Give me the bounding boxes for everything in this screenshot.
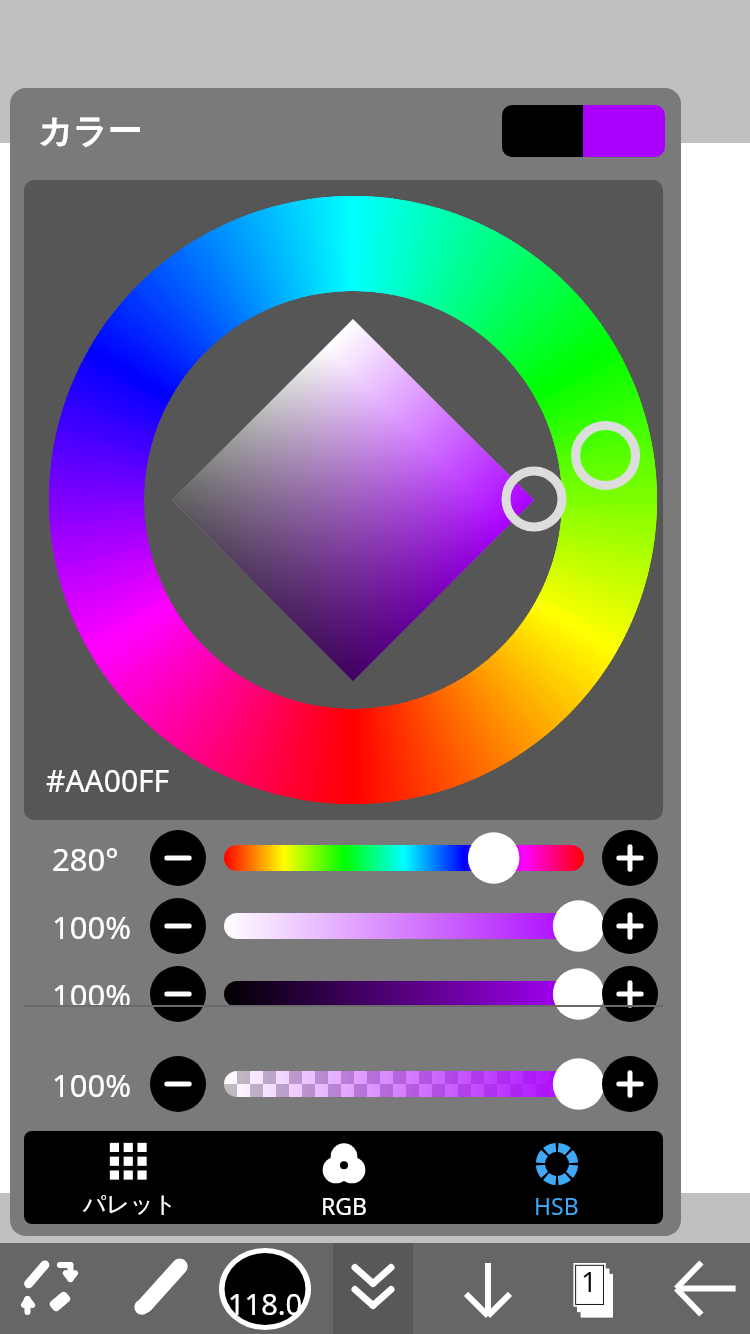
staticText: 280° bbox=[52, 838, 152, 880]
button[interactable]: #AA00FF bbox=[24, 180, 663, 820]
button[interactable]: 100% slider bbox=[220, 898, 610, 954]
button[interactable]: Increase 100% bbox=[602, 898, 658, 954]
button[interactable]: Download bbox=[443, 1243, 533, 1334]
staticText: パレット bbox=[83, 1190, 178, 1219]
button[interactable]: Current and previous color bbox=[502, 105, 665, 157]
button[interactable]: Decrease 280° bbox=[150, 830, 206, 886]
staticText: HSB bbox=[534, 1190, 579, 1221]
button[interactable]: 100% slider bbox=[220, 1056, 610, 1112]
button[interactable]: Increase 100% bbox=[602, 1056, 658, 1112]
button[interactable]: 280° slider bbox=[220, 830, 610, 886]
staticText: 1 bbox=[581, 1262, 598, 1300]
button[interactable]: Increase 100% bbox=[602, 966, 658, 1022]
button[interactable]: Increase 280° bbox=[602, 830, 658, 886]
staticText: #AA00FF bbox=[46, 760, 170, 801]
staticText: RGB bbox=[321, 1190, 367, 1221]
button[interactable]: パレット bbox=[24, 1131, 237, 1224]
button[interactable]: Decrease 100% bbox=[150, 966, 206, 1022]
staticText: 100% bbox=[52, 974, 152, 1016]
staticText: カラー bbox=[38, 110, 142, 153]
button[interactable]: Decrease 100% bbox=[150, 1056, 206, 1112]
staticText: 118.0 bbox=[228, 1284, 303, 1323]
button[interactable]: Brush size 118.0 bbox=[219, 1248, 311, 1330]
button[interactable]: HSB bbox=[450, 1131, 663, 1224]
button[interactable]: RGB bbox=[237, 1131, 450, 1224]
button[interactable]: Layers bbox=[550, 1243, 640, 1334]
button[interactable]: Brush bbox=[112, 1243, 202, 1334]
staticText: 100% bbox=[52, 1064, 152, 1106]
staticText: 100% bbox=[52, 906, 152, 948]
button[interactable]: Collapse panel bbox=[333, 1243, 413, 1334]
button[interactable]: Swap brush and eraser bbox=[8, 1243, 98, 1334]
button[interactable]: Back bbox=[660, 1243, 750, 1334]
button[interactable]: Decrease 100% bbox=[150, 898, 206, 954]
button[interactable]: 100% slider bbox=[220, 966, 610, 1022]
